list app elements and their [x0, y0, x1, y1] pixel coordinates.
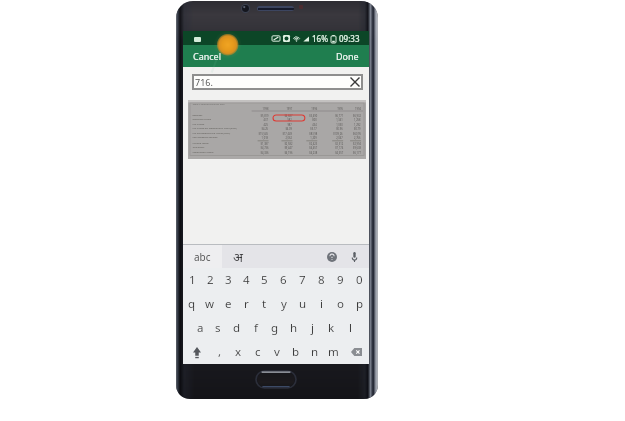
staticText: a [197, 320, 204, 336]
staticText: u [299, 296, 307, 312]
button[interactable]: Help [321, 245, 343, 268]
button[interactable]: w [201, 292, 219, 316]
button[interactable]: q [183, 292, 201, 316]
button[interactable]: s [209, 316, 227, 340]
staticText: m [328, 344, 339, 360]
button[interactable]: 9 [331, 268, 350, 292]
button[interactable]: c [248, 340, 267, 364]
button[interactable]: r [237, 292, 255, 316]
button[interactable]: Voice input [343, 245, 365, 268]
staticText: 09:33 [339, 33, 360, 44]
button[interactable]: h [284, 316, 303, 340]
staticText: 1 [189, 272, 196, 288]
button[interactable]: 8 [312, 268, 331, 292]
button[interactable]: 2 [201, 268, 219, 292]
staticText: d [233, 320, 241, 336]
button[interactable]: d [227, 316, 246, 340]
staticText: Done [336, 50, 359, 62]
button[interactable]: t [255, 292, 274, 316]
staticText: 5 [261, 272, 268, 288]
button[interactable]: m [324, 340, 343, 364]
staticText: y [281, 296, 287, 312]
button[interactable]: f [246, 316, 265, 340]
staticText: 9 [337, 272, 344, 288]
button[interactable]: 716. [192, 74, 363, 90]
staticText: i [320, 296, 323, 312]
button[interactable]: 6 [274, 268, 293, 292]
button[interactable]: , [210, 340, 229, 364]
staticText: n [311, 344, 319, 360]
staticText: e [225, 296, 232, 312]
staticText: f [254, 320, 258, 336]
button[interactable]: o [331, 292, 350, 316]
button[interactable]: e [219, 292, 237, 316]
staticText: v [274, 344, 280, 360]
staticText: 16% [312, 33, 328, 44]
button[interactable]: 0 [350, 268, 369, 292]
staticText: 8 [318, 272, 325, 288]
button[interactable]: l [341, 316, 360, 340]
staticText: 4 [243, 272, 250, 288]
button[interactable]: i [312, 292, 331, 316]
button[interactable]: k [322, 316, 341, 340]
staticText: 2 [207, 272, 214, 288]
staticText: j [311, 320, 314, 336]
button[interactable]: 1 [183, 268, 201, 292]
staticText: g [271, 320, 279, 336]
staticText: x [235, 344, 242, 360]
staticText: r [244, 296, 249, 312]
staticText: 6 [280, 272, 287, 288]
staticText: q [188, 296, 196, 312]
button[interactable]: Clear [347, 74, 363, 90]
staticText: अ [233, 248, 243, 266]
staticText: Cancel [193, 50, 222, 62]
button[interactable]: x [229, 340, 248, 364]
staticText: b [292, 344, 300, 360]
button[interactable]: 5 [255, 268, 274, 292]
staticText: 3 [225, 272, 232, 288]
button[interactable]: g [265, 316, 284, 340]
button[interactable]: v [267, 340, 286, 364]
button[interactable]: b [286, 340, 305, 364]
staticText: c [255, 344, 261, 360]
staticText: o [337, 296, 344, 312]
button[interactable]: 7 [293, 268, 312, 292]
button[interactable]: u [293, 292, 312, 316]
button[interactable]: abc [183, 245, 222, 268]
staticText: h [290, 320, 298, 336]
button[interactable]: अ [222, 245, 254, 268]
staticText: p [356, 296, 364, 312]
button[interactable]: Shift [183, 340, 210, 364]
button[interactable]: 3 [219, 268, 237, 292]
staticText: , [218, 344, 222, 360]
staticText: 7 [299, 272, 306, 288]
staticText: 0 [356, 272, 363, 288]
button[interactable]: 4 [237, 268, 255, 292]
button[interactable]: Backspace [343, 340, 369, 364]
staticText: w [205, 296, 215, 312]
staticText: abc [194, 250, 211, 264]
button[interactable]: n [305, 340, 324, 364]
staticText: t [262, 296, 267, 312]
staticText: k [328, 320, 335, 336]
button[interactable] [188, 100, 366, 159]
button[interactable]: Home [256, 370, 296, 389]
button[interactable]: Done [326, 45, 369, 67]
staticText: s [215, 320, 221, 336]
button[interactable]: p [350, 292, 369, 316]
button[interactable]: j [303, 316, 322, 340]
staticText: 716. [195, 76, 213, 88]
button[interactable]: Cancel [183, 45, 232, 67]
button[interactable]: y [274, 292, 293, 316]
staticText: l [349, 320, 352, 336]
button[interactable]: a [191, 316, 209, 340]
